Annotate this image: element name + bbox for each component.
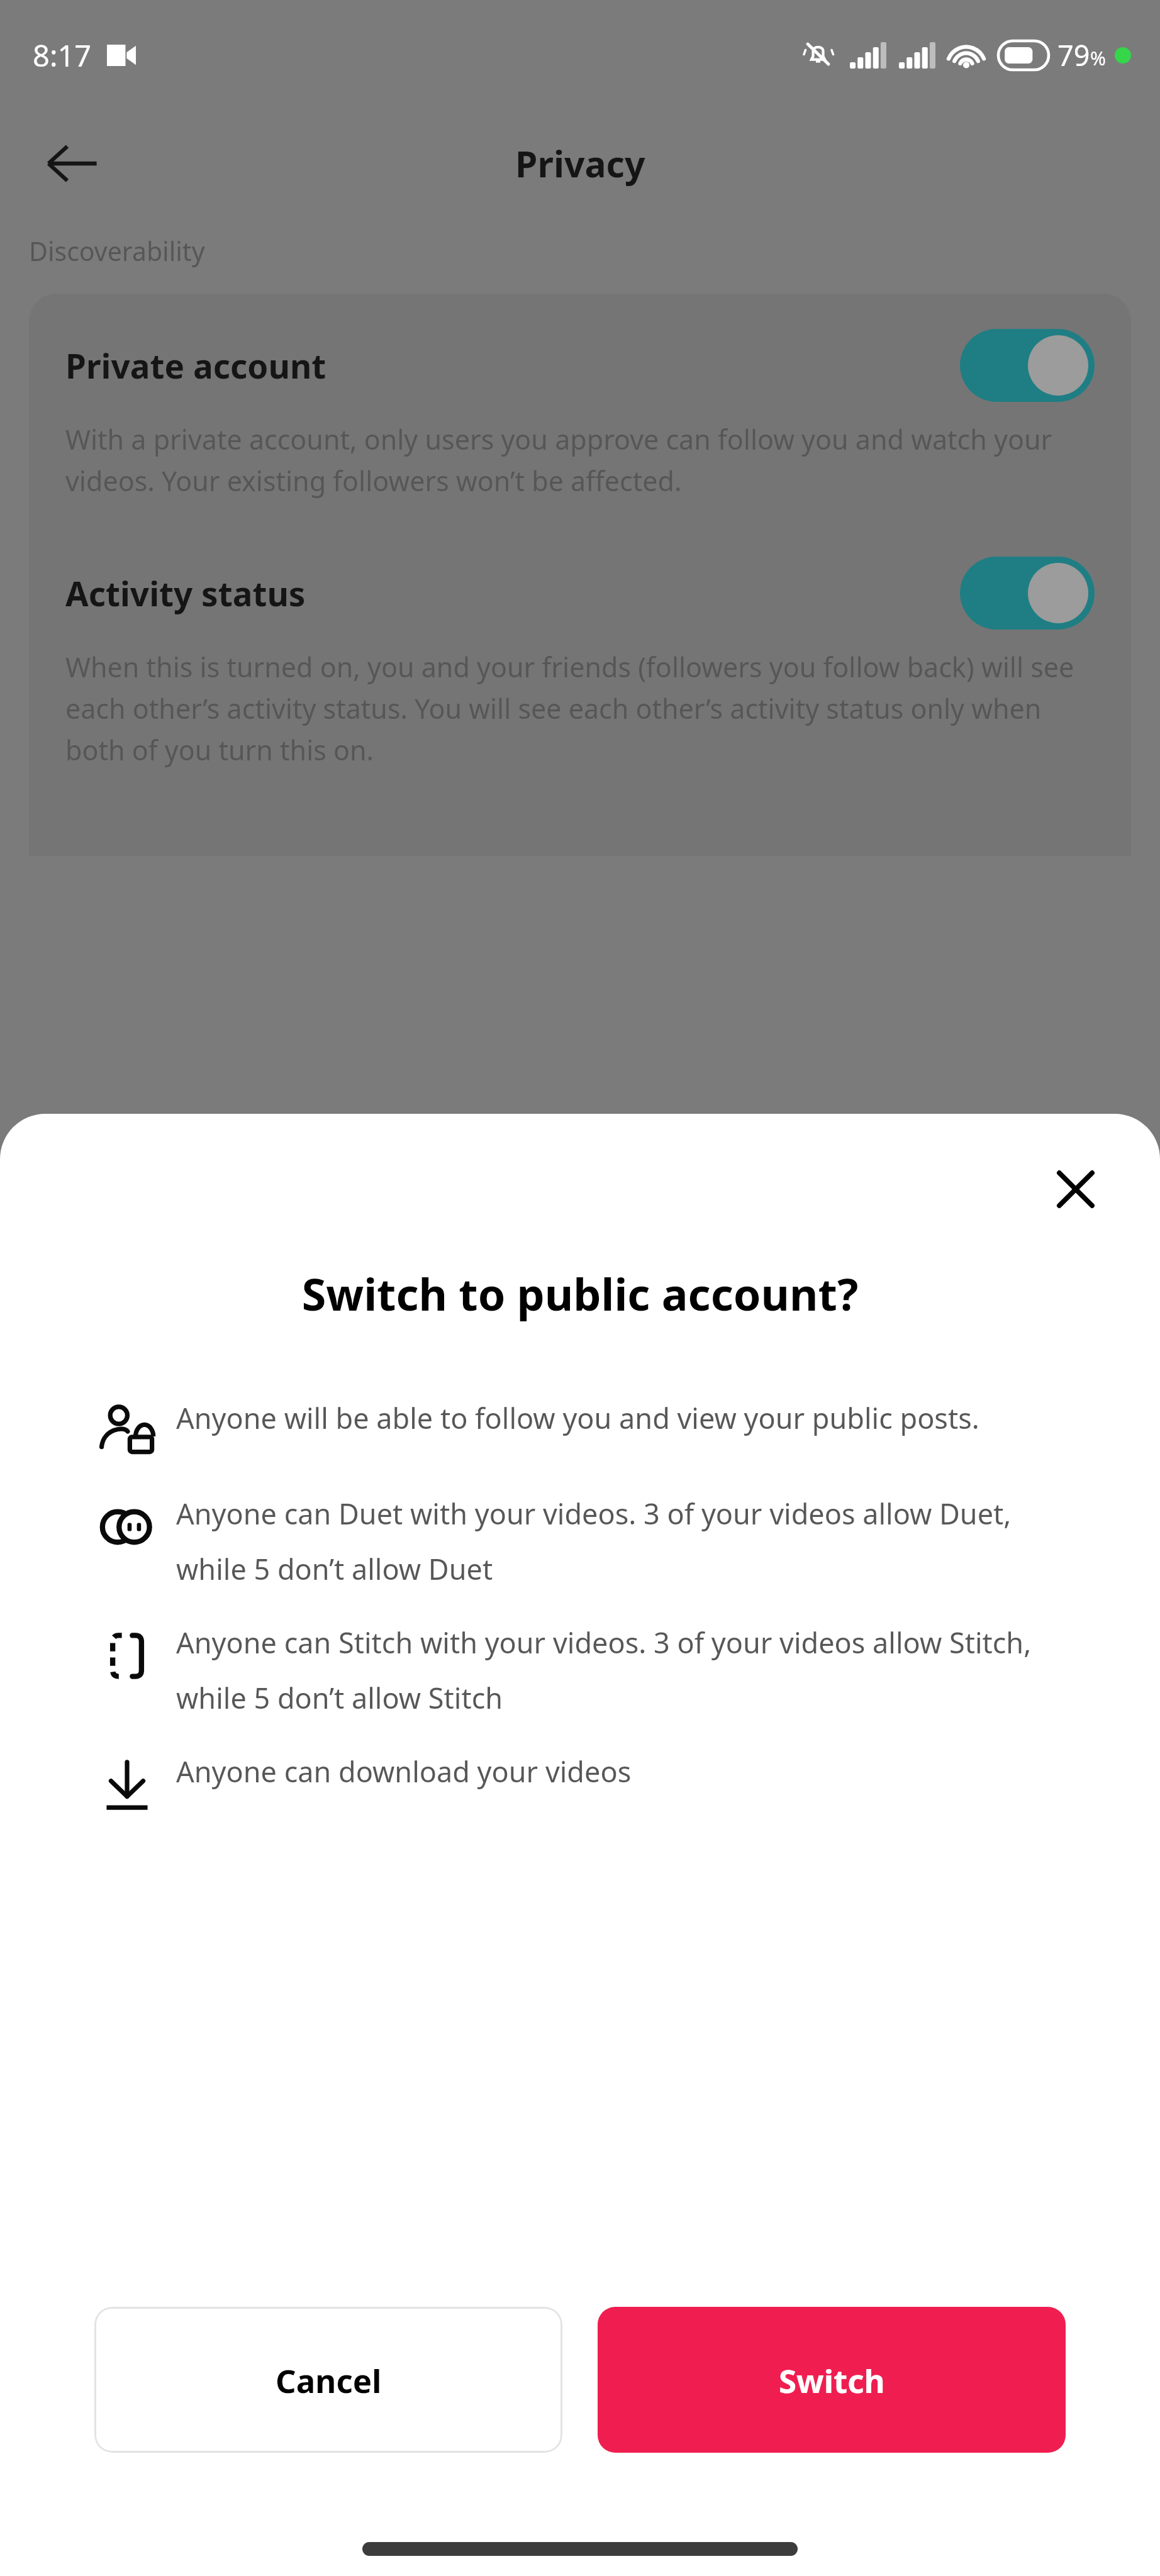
button[interactable]: Cancel bbox=[94, 2307, 562, 2453]
staticText: % bbox=[1090, 45, 1106, 71]
staticText: Cancel bbox=[276, 2358, 382, 2402]
staticText: When this is turned on, you and your fri… bbox=[65, 648, 1095, 768]
button[interactable]: Private account toggle bbox=[960, 329, 1095, 402]
staticText: With a private account, only users you a… bbox=[65, 421, 1095, 499]
staticText: 79 bbox=[1057, 36, 1090, 74]
button[interactable]: Activity status toggle bbox=[960, 557, 1095, 630]
staticText: Activity status bbox=[65, 570, 960, 616]
button[interactable]: Back bbox=[36, 128, 107, 199]
button[interactable]: Switch bbox=[598, 2307, 1066, 2453]
staticText: Discoverability bbox=[29, 233, 205, 269]
button[interactable]: Private account bbox=[65, 329, 1095, 402]
staticText: Anyone can Stitch with your videos. 3 of… bbox=[176, 1623, 1078, 1717]
staticText: 8:17 bbox=[33, 35, 92, 75]
button[interactable]: Activity status bbox=[65, 557, 1095, 630]
staticText: Anyone can download your videos bbox=[176, 1752, 632, 1790]
staticText: Switch to public account? bbox=[120, 1263, 1040, 1323]
staticText: Privacy bbox=[515, 139, 645, 188]
staticText: Private account bbox=[65, 343, 960, 388]
staticText: Anyone will be able to follow you and vi… bbox=[176, 1399, 979, 1437]
button[interactable]: Close bbox=[1043, 1157, 1108, 1222]
staticText: Anyone can Duet with your videos. 3 of y… bbox=[176, 1494, 1078, 1588]
staticText: Switch bbox=[779, 2358, 885, 2402]
